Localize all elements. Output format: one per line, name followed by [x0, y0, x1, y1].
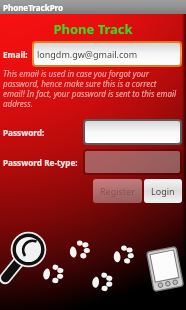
- staticText: Register: [100, 185, 135, 197]
- button[interactable]: [85, 121, 180, 143]
- button[interactable]: Login: [151, 179, 175, 203]
- staticText: This email is used in case you forgot yo…: [3, 68, 180, 109]
- staticText: longdm.gw@gmail.com: [37, 48, 138, 60]
- staticText: Phone Track: [0, 20, 186, 38]
- staticText: Email:: [3, 49, 28, 60]
- staticText: Login: [151, 185, 175, 197]
- staticText: Password Re-type:: [3, 157, 78, 168]
- button[interactable]: Register: [100, 179, 135, 203]
- staticText: Password:: [3, 127, 45, 138]
- button[interactable]: [85, 151, 180, 173]
- button[interactable]: longdm.gw@gmail.com: [34, 43, 180, 65]
- staticText: PhoneTrackPro: [3, 2, 64, 13]
